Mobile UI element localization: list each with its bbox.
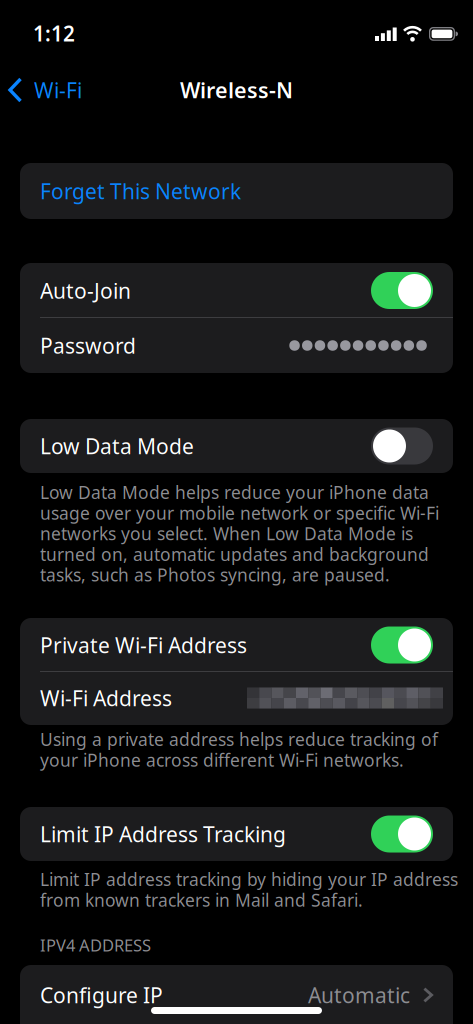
staticText: Automatic	[308, 981, 410, 1009]
staticText: Low Data Mode	[40, 432, 194, 460]
button[interactable]: Back	[7, 76, 104, 104]
staticText: Limit IP address tracking by hiding your…	[40, 869, 458, 910]
staticText: Wi-Fi	[34, 76, 82, 104]
button[interactable]: Low Data Mode	[371, 427, 433, 464]
staticText: 1:12	[33, 19, 75, 47]
staticText: Password	[40, 331, 136, 360]
button[interactable]: Forget This Network	[20, 163, 453, 219]
staticText: Limit IP Address Tracking	[40, 820, 286, 848]
button[interactable]: Private Wi-Fi Address	[371, 626, 433, 663]
staticText: Private Wi-Fi Address	[40, 631, 247, 659]
staticText: Forget This Network	[40, 177, 241, 205]
staticText: Configure IP	[40, 981, 163, 1009]
staticText: Auto-Join	[40, 276, 131, 305]
staticText: IPV4 ADDRESS	[40, 934, 151, 956]
staticText: Wi-Fi Address	[40, 684, 172, 712]
staticText: Low Data Mode helps reduce your iPhone d…	[40, 482, 439, 585]
staticText: Wireless-N	[180, 75, 293, 105]
button[interactable]: Configure IP	[20, 965, 453, 1024]
staticText: Using a private address helps reduce tra…	[40, 729, 438, 770]
button[interactable]: Limit IP Address Tracking	[371, 815, 433, 852]
button[interactable]: Auto-Join	[371, 272, 433, 309]
